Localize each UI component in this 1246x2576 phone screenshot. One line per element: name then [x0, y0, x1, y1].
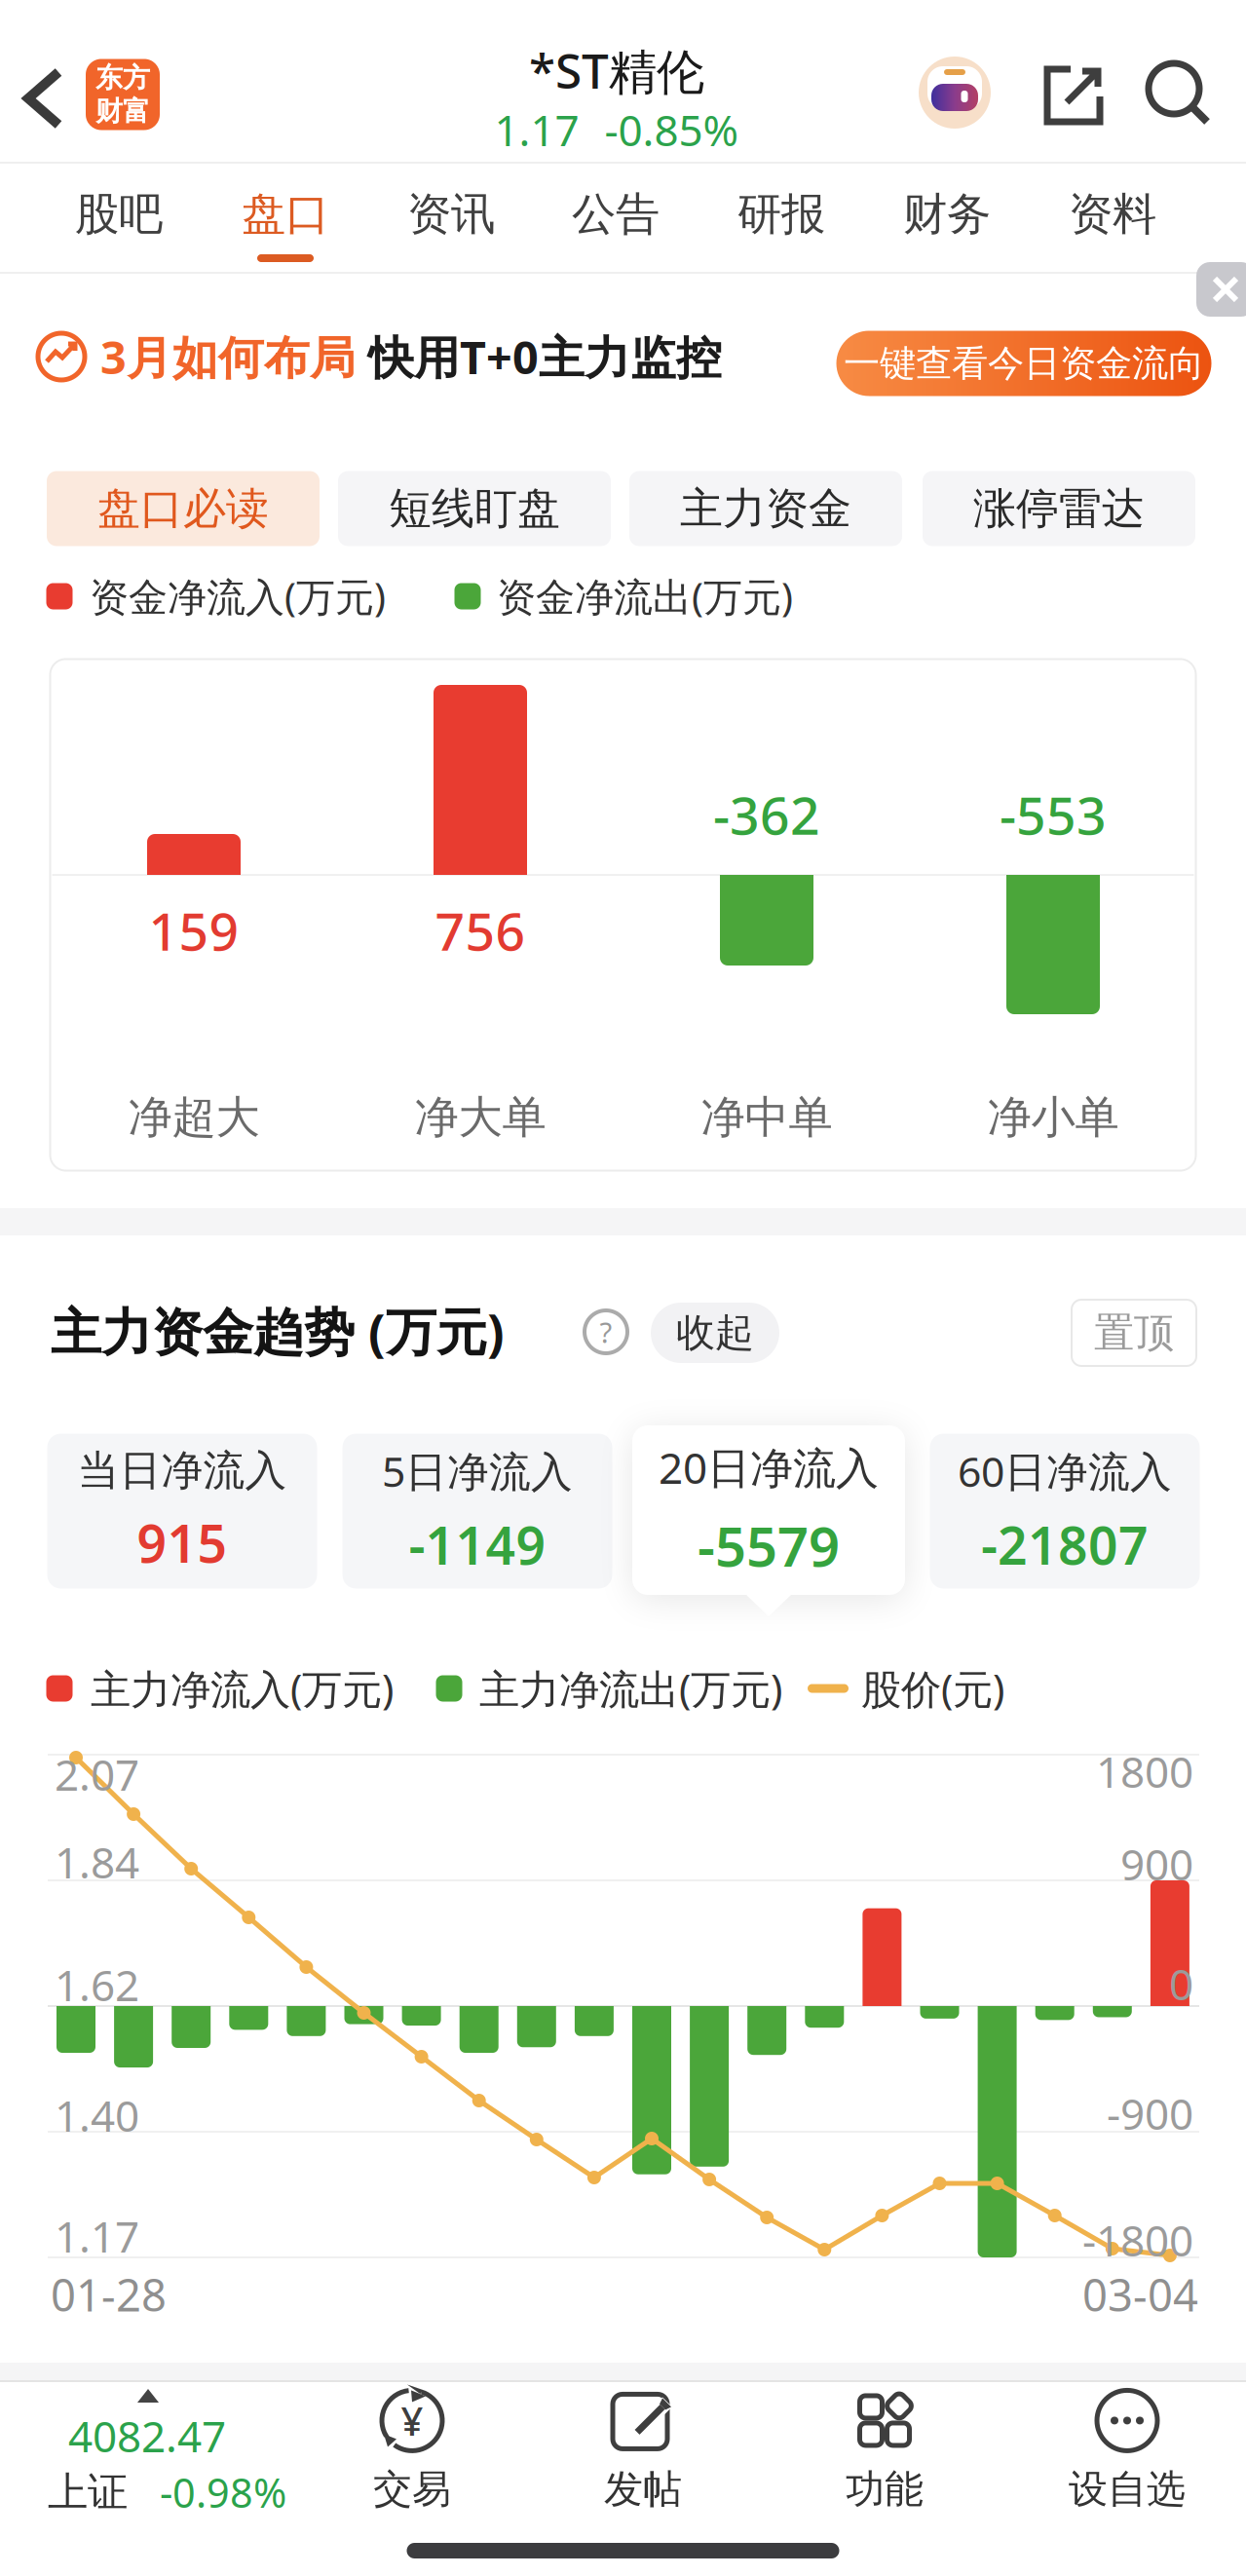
- staticText: 主力净流入(万元): [91, 1662, 394, 1715]
- staticText: 涨停雷达: [973, 482, 1145, 535]
- staticText: -21807: [981, 1510, 1149, 1579]
- staticText: 财务: [903, 187, 991, 242]
- staticText: 资金净流入(万元): [90, 570, 386, 622]
- staticText: -1149: [409, 1510, 546, 1579]
- staticText: 1.17: [55, 2208, 139, 2264]
- staticText: 交易: [373, 2465, 451, 2513]
- button[interactable]: [1196, 262, 1246, 317]
- button[interactable]: 公告: [543, 170, 689, 258]
- staticText: 159: [149, 896, 239, 965]
- button[interactable]: 财务: [874, 170, 1020, 258]
- staticText: -5579: [698, 1509, 840, 1582]
- staticText: 20日净流入: [659, 1439, 879, 1496]
- staticText: 东方: [95, 61, 150, 95]
- staticText: 净小单: [987, 1090, 1119, 1145]
- button[interactable]: 置顶: [1072, 1300, 1196, 1366]
- staticText: 主力资金趋势 (万元): [51, 1297, 505, 1365]
- button[interactable]: ¥: [373, 2391, 451, 2513]
- button[interactable]: 资讯: [378, 170, 524, 258]
- staticText: 60日净流入: [958, 1443, 1172, 1498]
- staticText: 资金净流出(万元): [497, 570, 793, 622]
- staticText: 置顶: [1094, 1308, 1174, 1358]
- staticText: -900: [1107, 2085, 1193, 2142]
- staticText: 净超大: [128, 1090, 260, 1145]
- staticText: 研报: [737, 187, 825, 242]
- button[interactable]: 涨停雷达: [923, 471, 1195, 546]
- button[interactable]: 当日净流入: [47, 1434, 317, 1589]
- button[interactable]: [0, 0, 1246, 164]
- staticText: 净中单: [701, 1090, 832, 1145]
- staticText: -1800: [1082, 2211, 1193, 2268]
- staticText: -0.98%: [160, 2466, 286, 2519]
- staticText: 公告: [572, 187, 660, 242]
- button[interactable]: 功能: [846, 2391, 924, 2513]
- button[interactable]: 一键查看今日资金流向: [836, 331, 1211, 396]
- staticText: 上证: [48, 2467, 128, 2517]
- button[interactable]: 研报: [708, 170, 854, 258]
- staticText: 3月如何布局: [100, 326, 356, 387]
- staticText: 资讯: [407, 187, 495, 242]
- button[interactable]: 短线盯盘: [338, 471, 611, 546]
- staticText: 4082.47: [68, 2407, 226, 2464]
- staticText: 主力资金: [680, 482, 851, 535]
- button[interactable]: 资料: [1039, 170, 1186, 258]
- staticText: 2.07: [55, 1746, 139, 1803]
- staticText: 发帖: [604, 2465, 682, 2513]
- button[interactable]: ?: [585, 1310, 627, 1353]
- button[interactable]: 20日净流入: [632, 1425, 905, 1595]
- button[interactable]: 5日净流入: [342, 1434, 612, 1589]
- button[interactable]: 盘口: [212, 170, 359, 258]
- staticText: 900: [1120, 1835, 1193, 1892]
- staticText: 收起: [676, 1309, 754, 1357]
- staticText: 一键查看今日资金流向: [844, 341, 1204, 386]
- staticText: 资料: [1069, 187, 1156, 242]
- button[interactable]: 4082.47: [0, 2380, 302, 2536]
- staticText: 1.17: [494, 101, 579, 158]
- button[interactable]: 东方: [86, 59, 160, 130]
- staticText: 盘口: [242, 187, 329, 242]
- staticText: 756: [435, 896, 526, 965]
- staticText: 1.40: [55, 2087, 139, 2144]
- staticText: 0: [1169, 1955, 1193, 2012]
- staticText: *ST精伦: [529, 38, 704, 102]
- button[interactable]: 收起: [651, 1303, 779, 1363]
- button[interactable]: [1043, 65, 1104, 126]
- staticText: -0.85%: [604, 101, 739, 158]
- button[interactable]: [1149, 63, 1209, 124]
- staticText: -553: [1000, 780, 1107, 849]
- staticText: 01-28: [51, 2265, 167, 2324]
- staticText: 主力净流出(万元): [479, 1662, 782, 1715]
- button[interactable]: 设自选: [1069, 2391, 1186, 2513]
- staticText: 快用T+0主力监控: [368, 326, 722, 387]
- button[interactable]: 股吧: [46, 170, 192, 258]
- staticText: 5日净流入: [382, 1443, 573, 1498]
- staticText: 净大单: [415, 1090, 546, 1145]
- staticText: 1800: [1096, 1743, 1193, 1800]
- staticText: 功能: [846, 2465, 924, 2513]
- button[interactable]: 发帖: [604, 2391, 682, 2513]
- staticText: -362: [713, 780, 820, 849]
- staticText: ?: [600, 1313, 612, 1351]
- staticText: 短线盯盘: [389, 482, 560, 535]
- button[interactable]: 60日净流入: [930, 1434, 1200, 1589]
- button[interactable]: 盘口必读: [47, 471, 320, 546]
- staticText: 当日净流入: [77, 1445, 287, 1496]
- staticText: 1.84: [55, 1833, 139, 1890]
- staticText: 03-04: [1082, 2265, 1198, 2324]
- staticText: ¥: [401, 2395, 423, 2446]
- staticText: 股吧: [75, 187, 163, 242]
- staticText: 915: [137, 1508, 227, 1577]
- staticText: 1.62: [55, 1956, 139, 2013]
- staticText: 设自选: [1069, 2465, 1186, 2513]
- button[interactable]: [919, 57, 991, 129]
- staticText: 股价(元): [861, 1662, 1004, 1715]
- staticText: 盘口必读: [97, 482, 269, 535]
- button[interactable]: 主力资金: [629, 471, 902, 546]
- staticText: 财富: [95, 95, 150, 128]
